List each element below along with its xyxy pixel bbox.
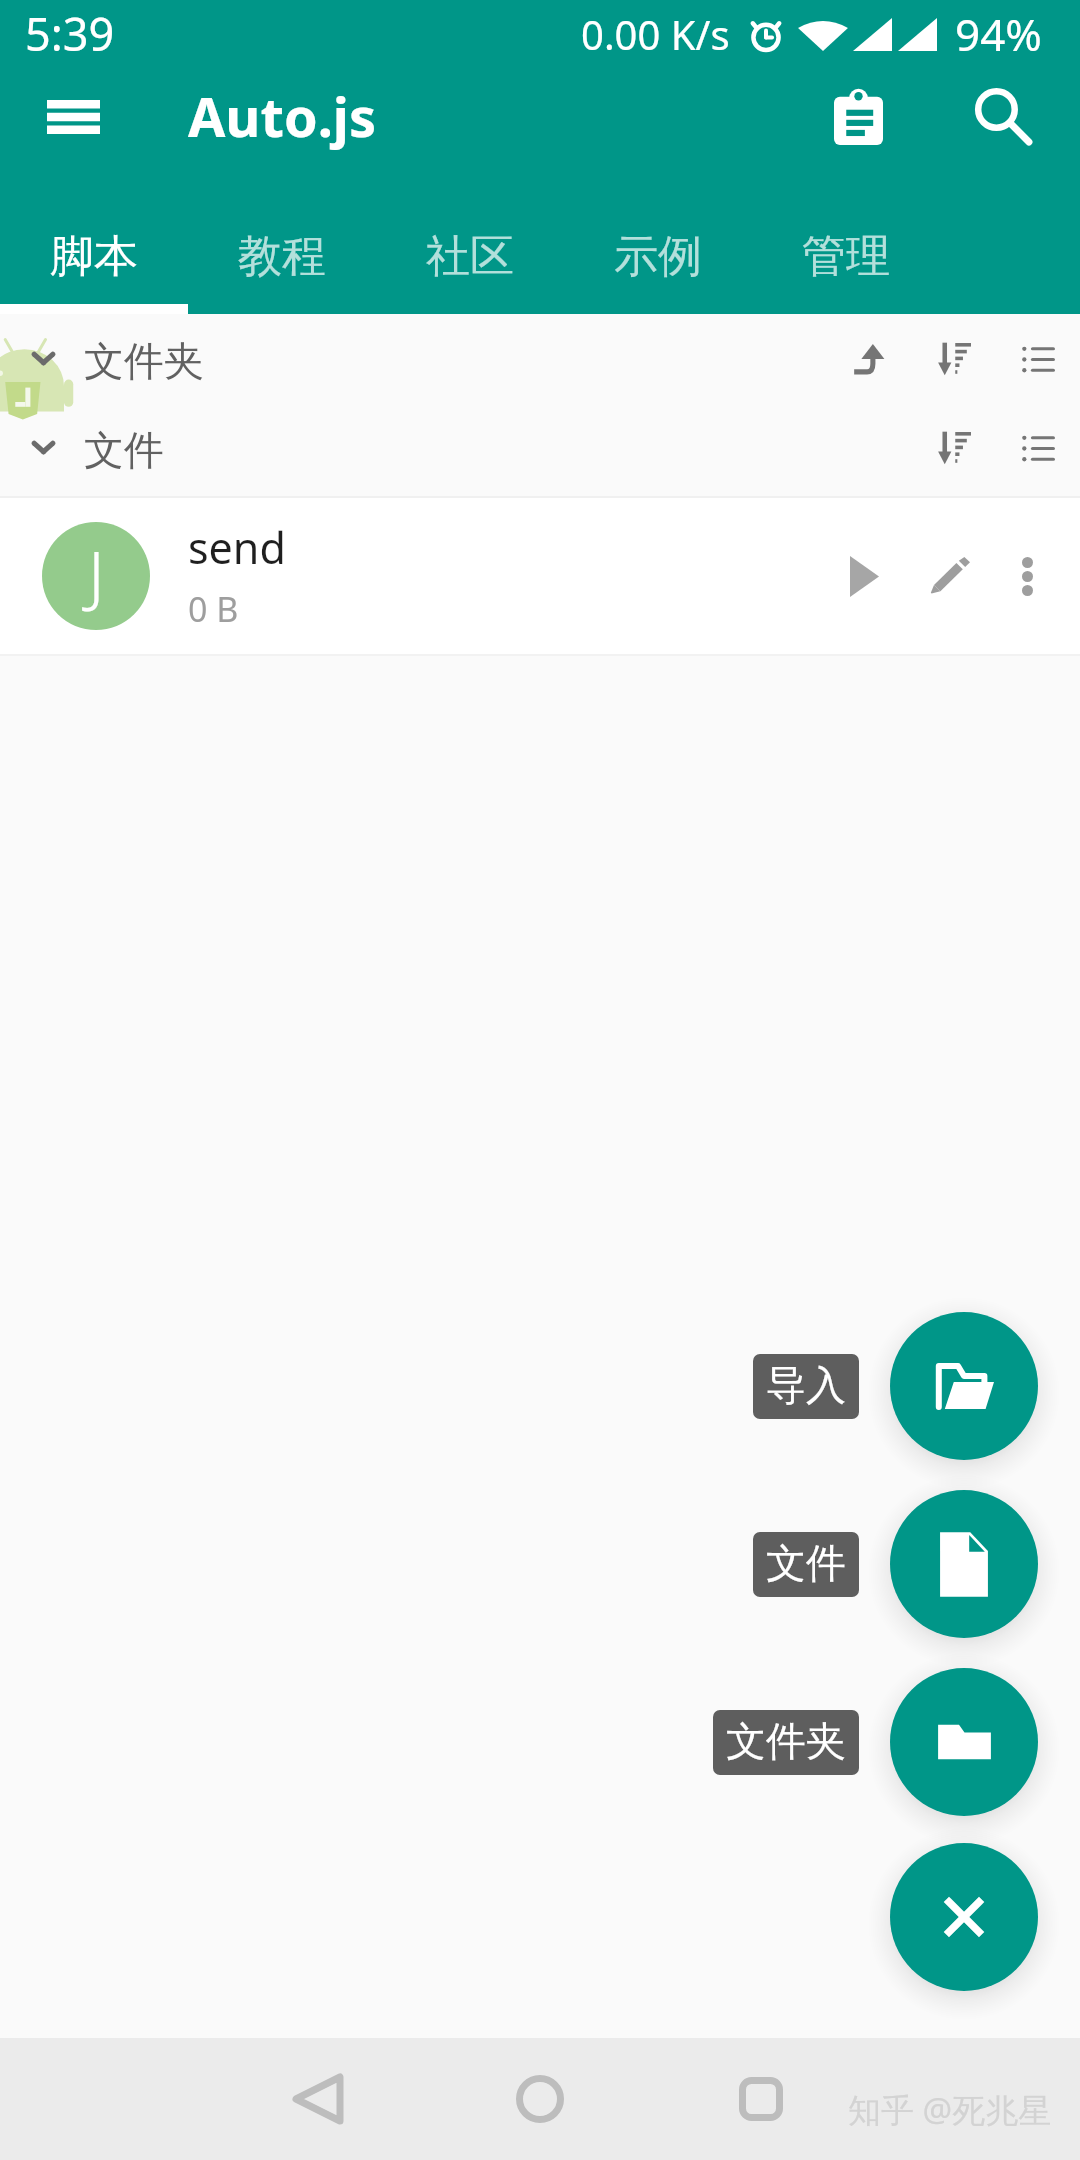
button[interactable]: Edit — [903, 529, 997, 623]
button[interactable]: Recents — [706, 2044, 816, 2154]
button[interactable]: Search — [949, 62, 1059, 172]
staticText: send — [188, 518, 286, 577]
button[interactable]: 文件夹 — [0, 314, 1080, 403]
staticText: 文件夹 — [84, 336, 204, 386]
staticText: 文件 — [766, 1538, 846, 1588]
staticText: 示例 — [614, 229, 702, 284]
button[interactable]: 文件 — [890, 1490, 1038, 1638]
staticText: 94% — [955, 4, 1042, 64]
button[interactable]: Home — [485, 2044, 595, 2154]
button[interactable]: 文件夹 — [890, 1668, 1038, 1816]
staticText: 文件 — [84, 425, 164, 475]
button[interactable]: Run — [817, 529, 911, 623]
button[interactable]: 导入 — [890, 1312, 1038, 1460]
button[interactable]: Menu — [20, 64, 126, 170]
button[interactable]: 文件 — [753, 1532, 859, 1597]
staticText: 管理 — [802, 229, 890, 284]
staticText: 0 B — [188, 586, 239, 632]
button[interactable]: Sort — [910, 316, 996, 402]
button[interactable]: 社区 — [376, 195, 564, 317]
button[interactable]: View mode — [995, 316, 1080, 402]
staticText: 教程 — [238, 229, 326, 284]
button[interactable]: Sort — [910, 405, 996, 491]
staticText: 文件夹 — [726, 1716, 846, 1766]
button[interactable]: J — [0, 498, 1080, 654]
button[interactable]: More options — [980, 529, 1074, 623]
staticText: J — [88, 528, 105, 618]
button[interactable]: 文件夹 — [713, 1710, 859, 1775]
button[interactable]: 示例 — [564, 195, 752, 317]
button[interactable]: Up one level — [827, 316, 913, 402]
button[interactable]: Close menu — [890, 1843, 1038, 1991]
button[interactable]: 管理 — [752, 195, 940, 317]
staticText: 导入 — [766, 1360, 846, 1410]
staticText: Auto.js — [188, 79, 377, 153]
staticText: 脚本 — [50, 229, 138, 284]
button[interactable]: Log — [803, 62, 913, 172]
staticText: 0.00 K/s — [581, 7, 730, 61]
staticText: 5:39 — [25, 3, 115, 64]
button[interactable]: 教程 — [188, 195, 376, 317]
button[interactable]: View mode — [995, 405, 1080, 491]
staticText: 社区 — [426, 229, 514, 284]
staticText: 知乎 @死兆星 — [848, 2087, 1052, 2132]
button[interactable]: 导入 — [753, 1354, 859, 1419]
button[interactable]: 脚本 — [0, 195, 188, 317]
button[interactable]: 文件 — [0, 403, 1080, 492]
button[interactable]: Back — [263, 2044, 373, 2154]
